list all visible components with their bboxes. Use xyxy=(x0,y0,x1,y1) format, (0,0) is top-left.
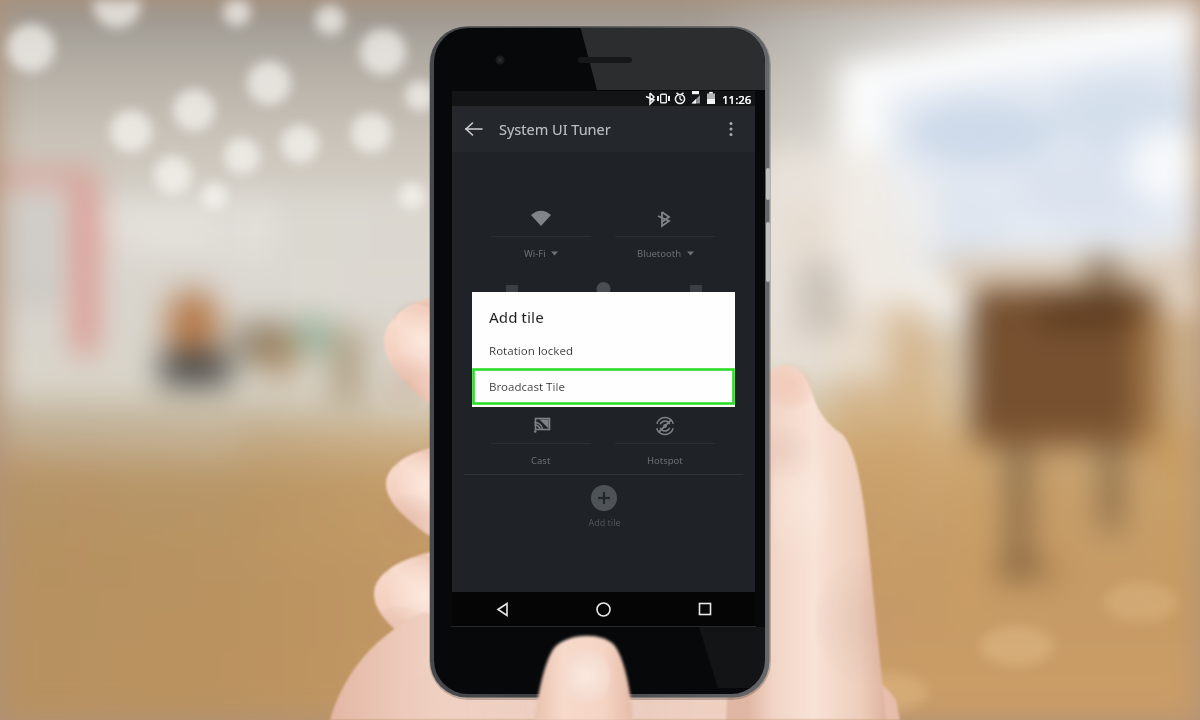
staticText: Cast xyxy=(531,454,551,467)
button[interactable]: More options xyxy=(709,107,753,151)
staticText: 11:26 xyxy=(722,92,752,107)
staticText: System UI Tuner xyxy=(499,119,611,139)
staticText: Broadcast Tile xyxy=(489,379,565,395)
staticText: Add tile xyxy=(588,516,621,528)
button[interactable]: Add tile xyxy=(574,485,634,528)
button[interactable]: Home xyxy=(553,592,654,626)
staticText: Rotation locked xyxy=(489,343,574,359)
button[interactable]: Rotation locked xyxy=(472,339,735,363)
button[interactable]: Bluetooth xyxy=(609,206,721,260)
staticText: Bluetooth xyxy=(637,247,682,260)
button[interactable]: Back xyxy=(452,107,496,151)
button[interactable]: Broadcast Tile xyxy=(472,368,735,405)
button[interactable]: Back xyxy=(452,592,553,626)
button[interactable]: Hotspot xyxy=(609,413,721,467)
staticText: Hotspot xyxy=(647,454,683,467)
staticText: Add tile xyxy=(489,307,544,327)
staticText: Wi-Fi xyxy=(524,247,546,260)
button[interactable]: Recent apps xyxy=(654,592,755,626)
button[interactable]: Cast xyxy=(485,413,597,467)
button[interactable]: Wi-Fi xyxy=(485,206,597,260)
